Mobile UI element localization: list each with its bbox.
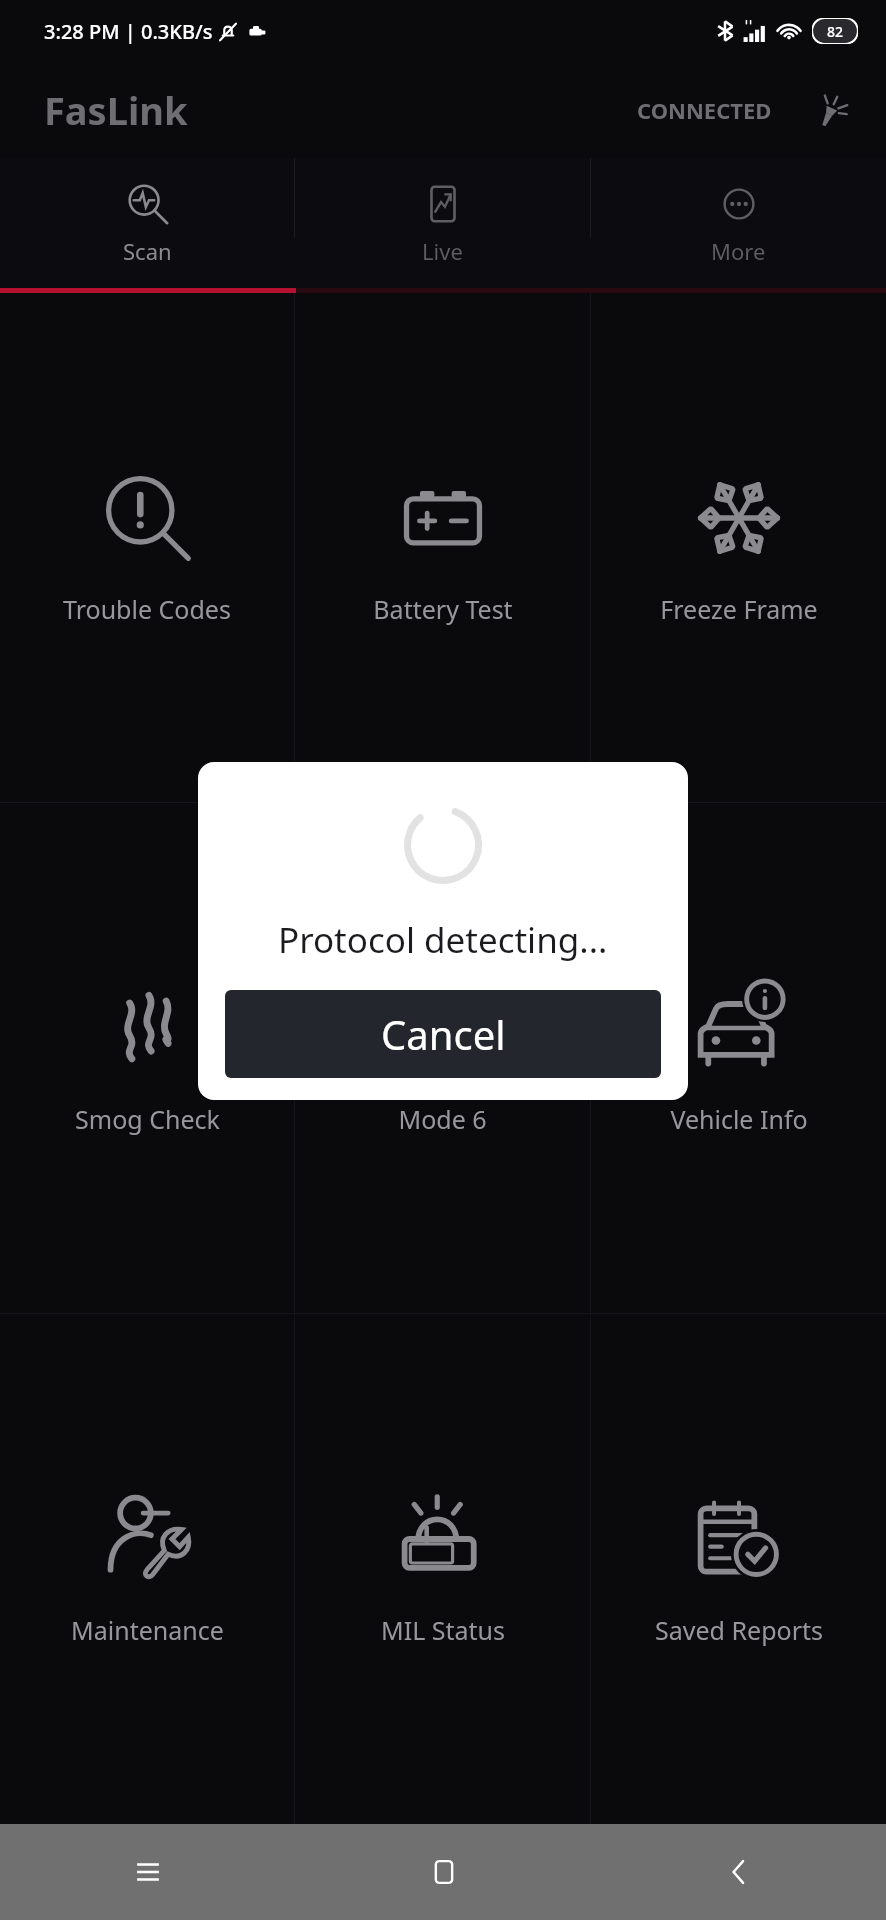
staticText: MIL Status — [381, 1613, 505, 1647]
staticText: 3:28 PM | 0.3KB/s — [44, 18, 213, 45]
button[interactable]: Maintenance — [0, 1314, 294, 1824]
button[interactable]: Smog Check — [0, 803, 294, 1313]
button[interactable]: Back — [591, 1824, 886, 1920]
button[interactable]: Recents — [0, 1824, 296, 1920]
staticText: Vehicle Info — [670, 1102, 808, 1136]
button[interactable]: Cancel — [225, 990, 661, 1078]
button[interactable]: Saved Reports — [591, 1314, 886, 1824]
button[interactable]: Freeze Frame — [591, 293, 886, 802]
staticText: Battery Test — [373, 592, 513, 626]
staticText: FasLink — [44, 84, 188, 136]
button[interactable]: Vehicle Info — [591, 803, 886, 1313]
staticText: Scan — [123, 236, 172, 266]
button[interactable]: MIL Status — [295, 1314, 590, 1824]
staticText: Cancel — [381, 1007, 506, 1061]
staticText: Protocol detecting... — [278, 916, 608, 964]
button[interactable]: More — [591, 158, 886, 288]
button[interactable]: Home — [296, 1824, 591, 1920]
staticText: Saved Reports — [655, 1613, 823, 1647]
staticText: More — [711, 236, 766, 266]
staticText: Live — [422, 236, 463, 266]
button[interactable]: Scan — [0, 158, 294, 288]
button[interactable]: Flashlight — [804, 82, 860, 138]
staticText: Freeze Frame — [660, 592, 818, 626]
button[interactable]: Mode 6 — [295, 803, 590, 1313]
staticText: Mode 6 — [398, 1102, 487, 1136]
button[interactable]: Battery Test — [295, 293, 590, 802]
button[interactable]: CONNECTED — [631, 87, 778, 133]
staticText: Trouble Codes — [63, 592, 231, 626]
staticText: Maintenance — [71, 1613, 224, 1647]
button[interactable]: Live — [295, 158, 590, 288]
staticText: 82 — [827, 22, 844, 41]
button[interactable]: Trouble Codes — [0, 293, 294, 802]
staticText: Smog Check — [75, 1102, 220, 1136]
staticText: CONNECTED — [637, 95, 772, 125]
